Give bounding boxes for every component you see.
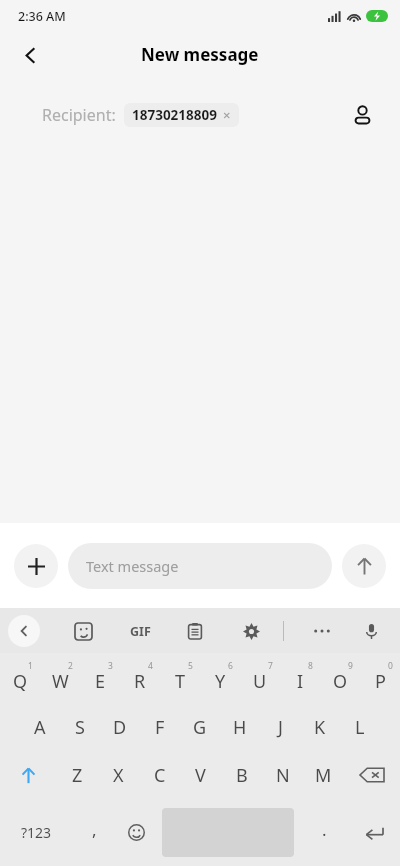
button[interactable]: Z: [56, 751, 98, 799]
staticText: 18730218809: [132, 106, 217, 124]
button[interactable]: Attach: [14, 544, 58, 588]
staticText: 8: [308, 660, 313, 672]
button[interactable]: S: [60, 703, 100, 751]
button[interactable]: J: [260, 703, 300, 751]
button[interactable]: Collapse toolbar: [8, 615, 40, 647]
button[interactable]: M: [303, 751, 344, 799]
staticText: K: [314, 715, 326, 740]
staticText: Z: [72, 763, 83, 788]
staticText: 3: [108, 660, 113, 672]
staticText: New message: [141, 43, 259, 66]
staticText: M: [315, 763, 332, 788]
staticText: O: [333, 669, 348, 694]
staticText: B: [236, 763, 248, 788]
button[interactable]: Y: [200, 653, 240, 703]
button[interactable]: B: [221, 751, 262, 799]
staticText: 6: [228, 660, 233, 672]
staticText: L: [355, 715, 365, 740]
staticText: D: [113, 715, 127, 740]
button[interactable]: X: [98, 751, 139, 799]
button[interactable]: I: [280, 653, 320, 703]
staticText: W: [52, 669, 69, 694]
staticText: G: [193, 715, 207, 740]
staticText: J: [278, 715, 283, 740]
button[interactable]: More options: [305, 614, 339, 648]
staticText: 1: [28, 660, 33, 672]
staticText: C: [154, 763, 166, 788]
button[interactable]: T: [160, 653, 200, 703]
button[interactable]: Text message: [68, 543, 332, 589]
button[interactable]: Settings: [234, 614, 268, 648]
staticText: GIF: [130, 623, 151, 640]
button[interactable]: K: [300, 703, 340, 751]
staticText: R: [134, 669, 146, 694]
staticText: E: [95, 669, 106, 694]
staticText: 2: [68, 660, 73, 672]
staticText: P: [375, 669, 386, 694]
button[interactable]: Backspace: [344, 751, 400, 799]
staticText: S: [75, 715, 85, 740]
staticText: 0: [388, 660, 393, 672]
staticText: .: [322, 818, 327, 841]
staticText: T: [175, 669, 186, 694]
button[interactable]: Enter: [348, 799, 400, 866]
button[interactable]: V: [180, 751, 221, 799]
button[interactable]: ?123: [0, 799, 72, 866]
staticText: Recipient:: [42, 104, 116, 126]
button[interactable]: C: [139, 751, 180, 799]
button[interactable]: Shift: [0, 751, 56, 799]
button[interactable]: .: [300, 799, 348, 866]
staticText: H: [233, 715, 247, 740]
button[interactable]: F: [140, 703, 180, 751]
button[interactable]: E: [80, 653, 120, 703]
staticText: X: [113, 763, 124, 788]
staticText: N: [276, 763, 290, 788]
button[interactable]: Stickers: [66, 614, 100, 648]
button[interactable]: Back: [8, 33, 52, 77]
button[interactable]: U: [240, 653, 280, 703]
button[interactable]: D: [100, 703, 140, 751]
staticText: I: [297, 669, 304, 694]
button[interactable]: Clipboard: [178, 614, 212, 648]
button[interactable]: R: [120, 653, 160, 703]
button[interactable]: H: [220, 703, 260, 751]
staticText: 2:36 AM: [18, 8, 66, 25]
button[interactable]: Q: [0, 653, 40, 703]
button[interactable]: GIF: [120, 611, 160, 651]
staticText: ?123: [21, 823, 52, 842]
button[interactable]: Send: [342, 544, 386, 588]
button[interactable]: L: [340, 703, 380, 751]
staticText: V: [195, 763, 206, 788]
button[interactable]: Emoji: [116, 799, 156, 866]
button[interactable]: Voice input: [354, 614, 388, 648]
staticText: 7: [268, 660, 273, 672]
staticText: Y: [215, 669, 226, 694]
button[interactable]: O: [320, 653, 360, 703]
button[interactable]: A: [20, 703, 60, 751]
staticText: 4: [148, 660, 153, 672]
button[interactable]: G: [180, 703, 220, 751]
staticText: 9: [348, 660, 353, 672]
button[interactable]: N: [262, 751, 303, 799]
staticText: Q: [13, 669, 28, 694]
staticText: F: [155, 715, 165, 740]
staticText: ,: [92, 818, 97, 841]
button[interactable]: W: [40, 653, 80, 703]
staticText: ×: [223, 106, 231, 124]
button[interactable]: P: [360, 653, 400, 703]
staticText: A: [34, 715, 46, 740]
button[interactable]: Choose contact: [342, 95, 382, 135]
staticText: Text message: [86, 556, 179, 576]
button[interactable]: ,: [72, 799, 116, 866]
button[interactable]: 18730218809: [124, 103, 239, 127]
staticText: U: [253, 669, 267, 694]
staticText: 5: [188, 660, 193, 672]
